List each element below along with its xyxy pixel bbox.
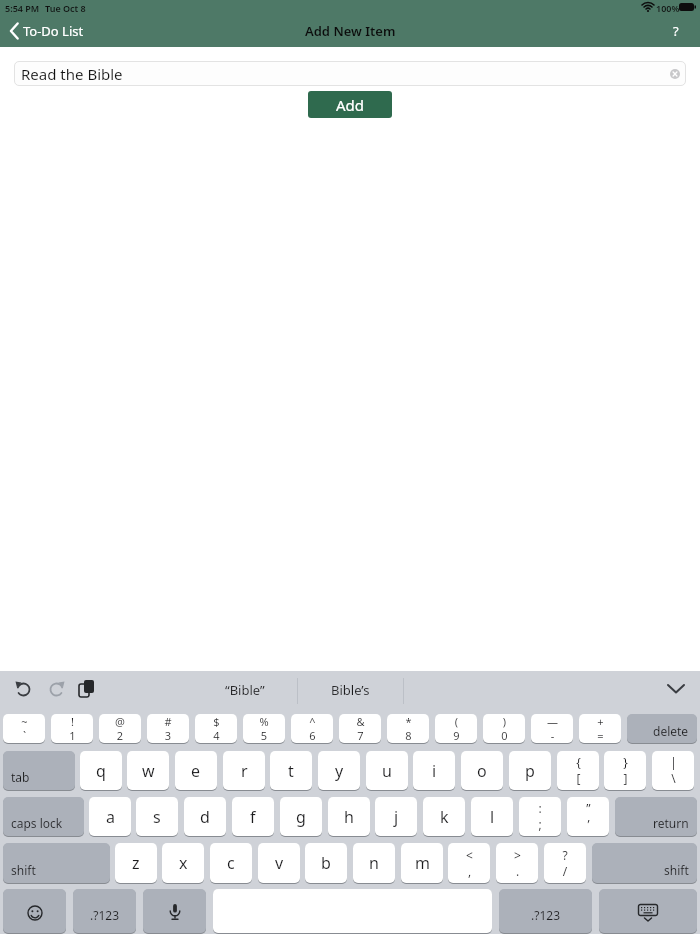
button[interactable]: | \ <box>652 751 694 790</box>
staticText: > . <box>514 847 521 880</box>
button[interactable]: .?123 <box>499 889 592 933</box>
staticText: ~ ` <box>21 714 28 743</box>
staticText: .?123 <box>531 907 561 923</box>
button[interactable]: b <box>305 843 347 883</box>
button[interactable]: z <box>115 843 157 883</box>
button[interactable]: y <box>318 751 360 790</box>
button[interactable] <box>599 889 697 933</box>
staticText: r <box>241 760 248 782</box>
button[interactable]: d <box>184 797 226 836</box>
button[interactable]: — - <box>531 714 573 743</box>
staticText: d <box>200 806 210 828</box>
button[interactable]: : ; <box>519 797 561 836</box>
staticText: ” ’ <box>586 800 591 833</box>
button[interactable]: c <box>210 843 252 883</box>
button[interactable]: ? <box>662 15 690 47</box>
staticText: : ; <box>538 800 542 833</box>
button[interactable]: m <box>401 843 443 883</box>
staticText: caps lock <box>11 815 63 831</box>
button[interactable]: ) 0 <box>483 714 525 743</box>
button[interactable]: p <box>509 751 551 790</box>
staticText: v <box>275 852 284 874</box>
staticText: Tue Oct 8 <box>45 2 86 14</box>
button[interactable]: # 3 <box>147 714 189 743</box>
button[interactable]: { [ <box>557 751 599 790</box>
button[interactable]: q <box>80 751 122 790</box>
button[interactable]: return <box>615 797 697 836</box>
button[interactable]: g <box>280 797 322 836</box>
button[interactable]: > . <box>496 843 538 883</box>
staticText: } ] <box>623 754 628 787</box>
staticText: z <box>132 852 140 874</box>
button[interactable]: u <box>366 751 408 790</box>
button[interactable]: j <box>375 797 417 836</box>
staticText: $ 4 <box>213 714 220 743</box>
staticText: “Bible” <box>225 681 265 699</box>
button[interactable]: k <box>423 797 465 836</box>
button[interactable]: & 7 <box>339 714 381 743</box>
button[interactable]: ~ ` <box>3 714 45 743</box>
staticText: .?123 <box>90 907 120 923</box>
staticText: e <box>191 760 201 782</box>
button[interactable]: delete <box>627 714 697 743</box>
staticText: a <box>106 806 115 828</box>
staticText: i <box>432 760 437 782</box>
button[interactable]: To-Do List <box>6 18 91 44</box>
button[interactable]: Bible’s <box>297 675 403 705</box>
staticText: c <box>227 852 235 874</box>
button[interactable]: * 8 <box>387 714 429 743</box>
button[interactable]: s <box>136 797 178 836</box>
button[interactable]: “Bible” <box>193 675 297 705</box>
button[interactable]: @ 2 <box>99 714 141 743</box>
button[interactable]: n <box>353 843 395 883</box>
button[interactable]: } ] <box>604 751 646 790</box>
button[interactable]: shift <box>3 843 110 883</box>
button[interactable]: caps lock <box>3 797 84 836</box>
button[interactable]: v <box>258 843 300 883</box>
staticText: k <box>440 806 449 828</box>
staticText: f <box>250 806 256 828</box>
staticText: & 7 <box>356 714 365 743</box>
button[interactable]: x <box>162 843 204 883</box>
button[interactable] <box>3 889 66 933</box>
button[interactable]: l <box>471 797 513 836</box>
button[interactable]: tab <box>3 751 75 790</box>
button[interactable]: r <box>223 751 265 790</box>
button[interactable] <box>143 889 206 933</box>
button[interactable]: $ 4 <box>195 714 237 743</box>
button[interactable] <box>666 683 686 695</box>
staticText: { [ <box>576 754 581 787</box>
button[interactable]: i <box>413 751 455 790</box>
staticText: u <box>382 760 392 782</box>
button[interactable]: h <box>328 797 370 836</box>
button[interactable] <box>78 680 95 698</box>
staticText: To-Do List <box>23 22 84 40</box>
staticText: ^ 6 <box>309 714 316 743</box>
button[interactable]: + = <box>579 714 621 743</box>
button[interactable]: f <box>232 797 274 836</box>
button[interactable] <box>670 69 680 79</box>
button[interactable]: ? / <box>544 843 586 883</box>
button[interactable]: Read the Bible <box>14 61 686 86</box>
button[interactable]: < , <box>448 843 490 883</box>
button[interactable]: ! 1 <box>51 714 93 743</box>
button[interactable]: ” ’ <box>567 797 609 836</box>
button[interactable]: o <box>461 751 503 790</box>
button[interactable]: ^ 6 <box>291 714 333 743</box>
button[interactable] <box>15 681 32 697</box>
button[interactable]: .?123 <box>73 889 136 933</box>
staticText: ) 0 <box>501 714 508 743</box>
button[interactable]: w <box>127 751 169 790</box>
staticText: Add New Item <box>305 22 396 40</box>
staticText: o <box>477 760 487 782</box>
staticText: b <box>321 852 331 874</box>
button[interactable]: t <box>270 751 312 790</box>
button[interactable] <box>48 681 65 697</box>
button[interactable]: % 5 <box>243 714 285 743</box>
button[interactable]: e <box>175 751 217 790</box>
button[interactable]: a <box>89 797 131 836</box>
button[interactable]: ( 9 <box>435 714 477 743</box>
button[interactable]: Add <box>308 91 392 118</box>
button[interactable]: shift <box>592 843 697 883</box>
